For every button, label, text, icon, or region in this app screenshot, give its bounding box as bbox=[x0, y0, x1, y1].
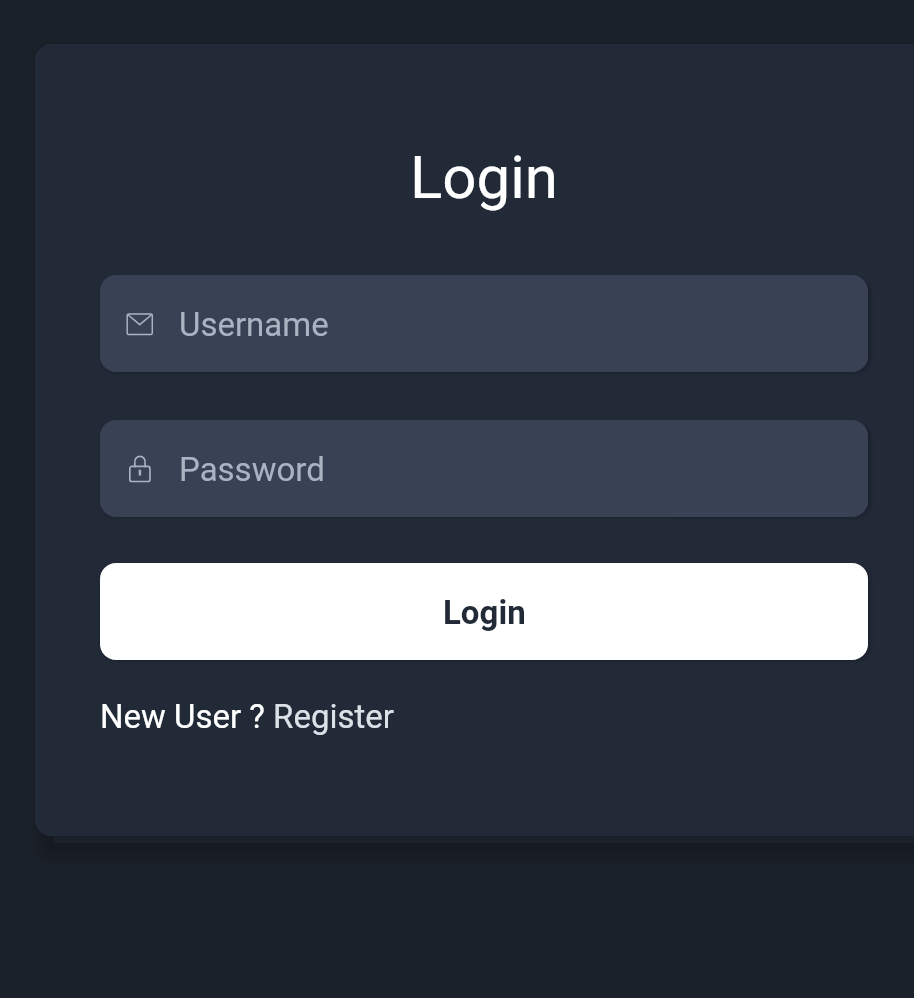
staticText: Username bbox=[179, 305, 329, 344]
button[interactable]: Username bbox=[100, 275, 868, 372]
other: Password bbox=[125, 454, 155, 484]
staticText: Login bbox=[443, 593, 526, 632]
staticText: Password bbox=[179, 450, 325, 489]
button[interactable]: Login bbox=[100, 563, 868, 660]
staticText: Login bbox=[410, 142, 558, 212]
staticText: New User ? Register bbox=[100, 697, 395, 736]
other: Email bbox=[125, 309, 155, 339]
button[interactable]: Password bbox=[100, 420, 868, 517]
button[interactable]: New User ? Register bbox=[100, 697, 395, 736]
